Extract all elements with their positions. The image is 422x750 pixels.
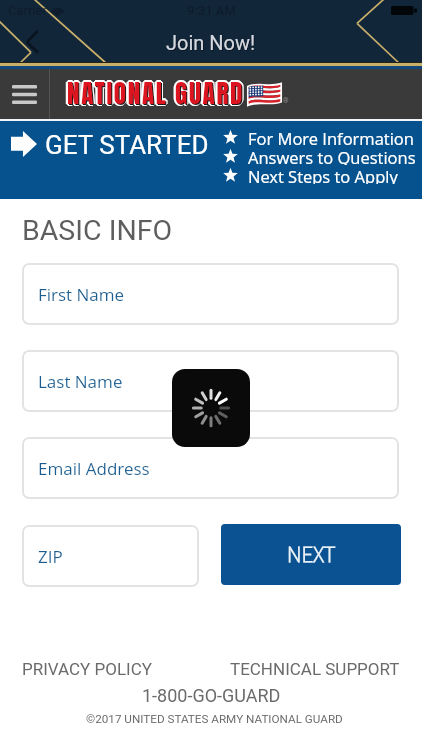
staticText: NATIONAL GUARD: [69, 75, 247, 113]
staticText: Email Address: [38, 457, 150, 480]
staticText: BASIC INFO: [22, 214, 173, 247]
button[interactable]: Last Name: [22, 350, 399, 412]
staticText: ©2017 UNITED STATES ARMY NATIONAL GUARD: [86, 712, 343, 726]
staticText: ®: [283, 97, 289, 105]
staticText: ZIP: [38, 545, 63, 568]
staticText: NATIONAL GUARD: [68, 76, 246, 114]
staticText: GET STARTED: [45, 130, 209, 160]
staticText: NEXT: [287, 538, 336, 571]
button[interactable]: First Name: [22, 263, 399, 325]
staticText: NATIONAL GUARD: [68, 74, 246, 112]
button[interactable]: 1-800-GO-GUARD: [142, 685, 281, 706]
staticText: NATIONAL GUARD: [66, 76, 244, 114]
staticText: Carrier: [8, 3, 47, 18]
button[interactable]: NEXT: [221, 524, 401, 585]
staticText: Next Steps to Apply: [248, 165, 398, 184]
staticText: Last Name: [38, 370, 123, 393]
staticText: NATIONAL GUARD: [67, 75, 245, 113]
staticText: NATIONAL GUARD: [66, 74, 244, 112]
staticText: NATIONAL GUARD: [67, 77, 245, 115]
button[interactable]: Open navigation menu: [0, 69, 49, 119]
staticText: 1-800-GO-GUARD: [142, 685, 281, 706]
staticText: 9:31 AM: [187, 3, 236, 18]
staticText: For More Information: [248, 127, 414, 146]
staticText: Answers to Questions: [248, 146, 416, 165]
button[interactable]: PRIVACY POLICY: [22, 659, 152, 679]
button[interactable]: Email Address: [22, 437, 399, 499]
staticText: PRIVACY POLICY: [22, 659, 152, 679]
staticText: NATIONAL GUARD: [67, 73, 245, 111]
staticText: NATIONAL GUARD: [65, 75, 243, 113]
staticText: TECHNICAL SUPPORT: [230, 659, 400, 679]
staticText: Join Now!: [166, 31, 256, 54]
button[interactable]: ZIP: [22, 525, 199, 587]
staticText: Join Now!: [167, 32, 257, 55]
staticText: NATIONAL GUARD: [68, 76, 246, 114]
staticText: First Name: [38, 283, 125, 306]
button[interactable]: TECHNICAL SUPPORT: [230, 659, 400, 679]
